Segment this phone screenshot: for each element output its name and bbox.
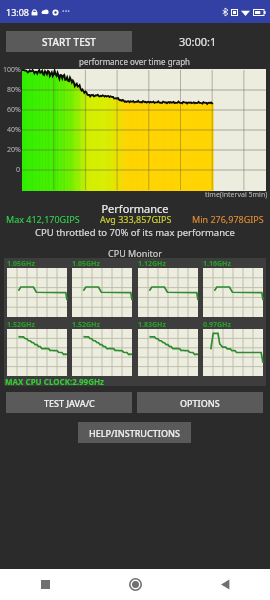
staticText: performance over time graph — [79, 56, 191, 67]
staticText: time(interval 5min) — [205, 190, 268, 200]
staticText: ••• — [62, 7, 70, 17]
staticText: 1.05GHz — [72, 259, 100, 268]
staticText: 30:00:1 — [179, 34, 217, 49]
staticText: 40% — [7, 125, 21, 135]
staticText: 1.12GHz — [138, 259, 166, 268]
staticText: CPU Monitor — [0, 247, 270, 259]
staticText: Avg 333,857GIPS — [100, 213, 172, 225]
button[interactable]: START TEST — [6, 31, 132, 52]
staticText: 0.97GHz — [203, 320, 231, 329]
button[interactable]: Recents — [0, 569, 90, 600]
staticText: TEST JAVA/C — [44, 397, 95, 409]
staticText: CPU throttled to 70% of its max performa… — [0, 226, 270, 239]
staticText: 20% — [7, 145, 21, 155]
staticText: Min 276,978GIPS — [192, 213, 264, 225]
staticText: 1.83GHz — [138, 320, 166, 329]
staticText: 60% — [7, 105, 21, 115]
staticText: 1.52GHz — [7, 320, 35, 329]
staticText: 80% — [7, 85, 21, 95]
staticText: Performance — [0, 201, 270, 216]
staticText: 13:08 — [6, 6, 30, 18]
staticText: OPTIONS — [180, 397, 220, 409]
staticText: MAX CPU CLOCK:2.99GHz — [5, 376, 105, 387]
staticText: START TEST — [42, 35, 96, 49]
button[interactable]: TEST JAVA/C — [6, 392, 132, 413]
button[interactable]: OPTIONS — [137, 392, 263, 413]
staticText: 100% — [3, 65, 21, 75]
button[interactable]: HELP/INSTRUCTIONS — [78, 422, 191, 443]
staticText: HELP/INSTRUCTIONS — [89, 427, 180, 439]
staticText: 1.52GHz — [72, 320, 100, 329]
button[interactable]: Home — [90, 569, 180, 600]
staticText: Max 412,170GIPS — [6, 213, 80, 225]
staticText: 0 — [16, 165, 21, 175]
staticText: 1.05GHz — [7, 259, 35, 268]
staticText: 1.16GHz — [203, 259, 231, 268]
button[interactable]: Back — [180, 569, 270, 600]
